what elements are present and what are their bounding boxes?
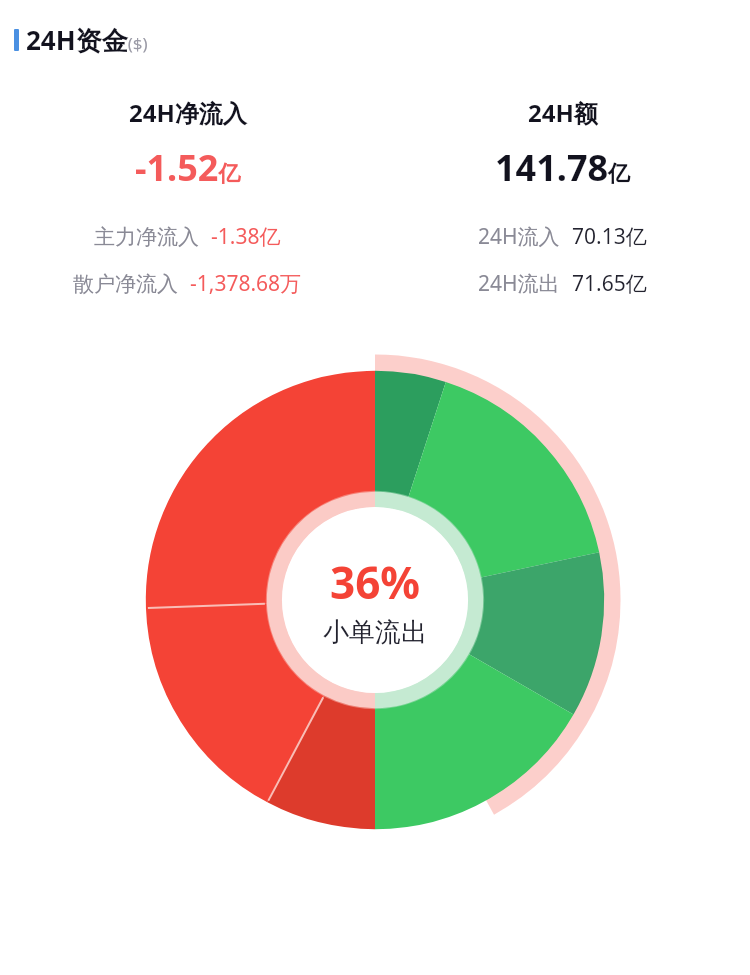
- staticText: 24H流入: [478, 222, 560, 251]
- staticText: 主力净流入: [94, 224, 199, 250]
- button[interactable]: 24H净流入: [0, 96, 375, 298]
- staticText: -1.38亿: [211, 222, 281, 251]
- button[interactable]: 24小时资金流向占比图: [135, 360, 615, 840]
- button[interactable]: 24H资金($): [14, 22, 750, 58]
- staticText: 71.65亿: [572, 269, 647, 298]
- staticText: 70.13亿: [572, 222, 647, 251]
- staticText: 24H额: [528, 96, 598, 129]
- staticText: 24H资金($): [26, 22, 148, 58]
- staticText: -1.52亿: [135, 143, 241, 192]
- staticText: 24H流出: [478, 269, 560, 298]
- staticText: 36%: [330, 552, 421, 612]
- staticText: 141.78亿: [495, 143, 631, 192]
- staticText: -1,378.68万: [190, 269, 302, 298]
- staticText: 24H净流入: [129, 96, 247, 129]
- staticText: 小单流出: [323, 616, 427, 649]
- button[interactable]: 24H额: [375, 96, 750, 298]
- staticText: 散户净流入: [73, 271, 178, 297]
